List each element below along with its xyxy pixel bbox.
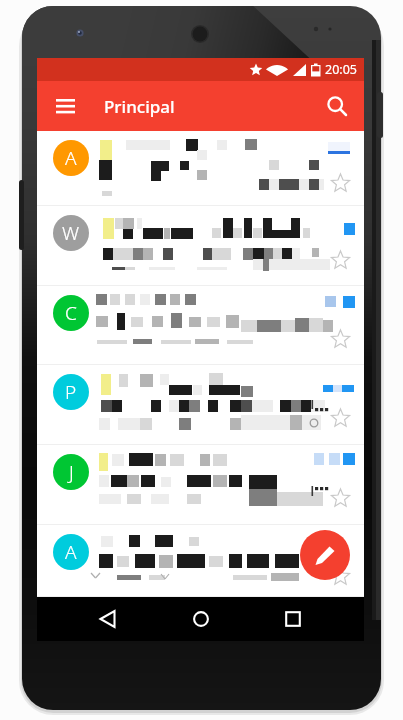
button[interactable]: W — [37, 206, 364, 286]
button[interactable]: Back — [86, 597, 130, 641]
staticText: J — [69, 459, 74, 485]
button[interactable]: Home — [179, 597, 223, 641]
button[interactable]: Menu — [45, 86, 85, 126]
staticText: W — [62, 220, 80, 246]
button[interactable]: J — [37, 445, 364, 525]
button[interactable]: Compose — [300, 530, 350, 580]
staticText: 20:05 — [325, 61, 357, 78]
button[interactable]: Star — [330, 566, 351, 587]
staticText: P — [65, 379, 77, 405]
button[interactable]: Star — [330, 250, 351, 271]
button[interactable]: Star — [330, 488, 351, 509]
button[interactable]: A — [37, 131, 364, 206]
button[interactable]: C — [37, 286, 364, 365]
staticText: A — [65, 145, 77, 171]
button[interactable]: Search — [317, 86, 357, 126]
button[interactable]: Recents — [271, 597, 315, 641]
button[interactable]: Star — [330, 173, 351, 194]
button[interactable]: P — [37, 365, 364, 445]
button[interactable]: Star — [330, 329, 351, 350]
staticText: Principal — [104, 95, 175, 118]
button[interactable]: A — [37, 525, 364, 597]
staticText: C — [65, 300, 77, 326]
staticText: A — [65, 539, 77, 565]
button[interactable]: Star — [330, 408, 351, 429]
